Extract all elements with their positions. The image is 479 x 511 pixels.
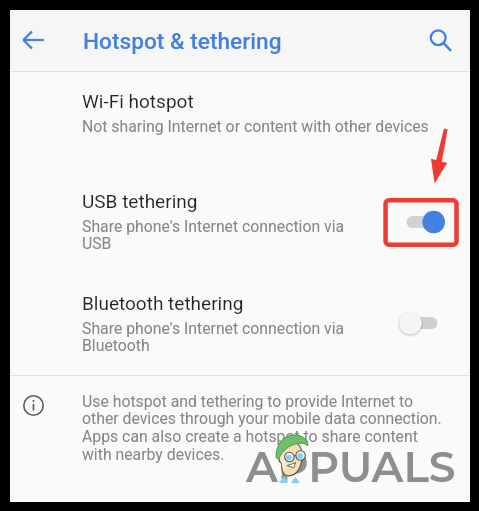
staticText: Use hotspot and tethering to provide Int…	[82, 392, 446, 464]
staticText: Share phone's Internet connection via US…	[82, 217, 354, 253]
button[interactable]: USB tethering	[10, 172, 470, 274]
staticText: Wi-Fi hotspot	[82, 90, 194, 112]
staticText: Bluetooth tethering	[82, 292, 244, 314]
staticText: Share phone's Internet connection via Bl…	[82, 319, 354, 355]
button[interactable]: Bluetooth tethering, off	[402, 306, 460, 340]
staticText: Hotspot & tethering	[83, 28, 282, 55]
button[interactable]: Search	[420, 20, 464, 64]
staticText: USB tethering	[82, 190, 198, 212]
staticText: APPUALS	[246, 441, 456, 493]
button[interactable]: USB tethering, on	[402, 205, 460, 239]
button[interactable]: Wi-Fi hotspot	[10, 72, 470, 172]
button[interactable]: Bluetooth tethering	[10, 274, 470, 374]
button[interactable]: Navigate up	[13, 18, 57, 62]
staticText: Not sharing Internet or content with oth…	[82, 117, 446, 136]
